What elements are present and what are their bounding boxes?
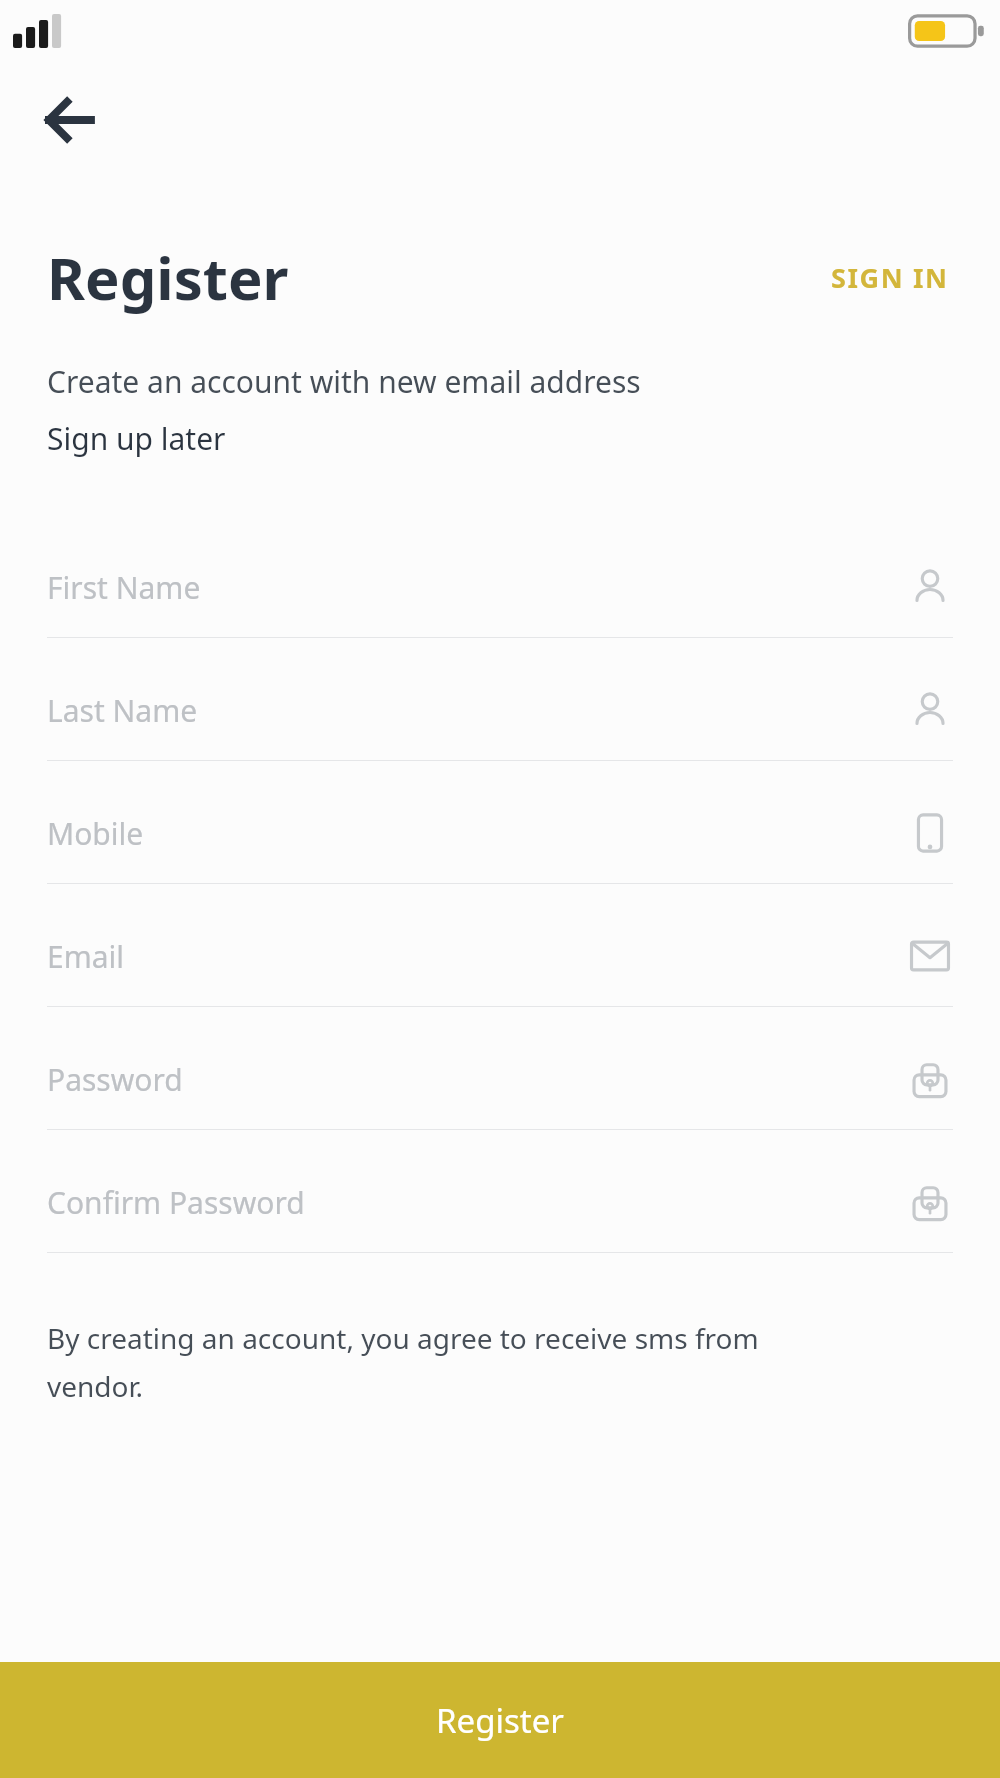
staticText: SIGN IN [831,259,949,296]
button[interactable]: Back [30,82,106,158]
staticText: Sign up later [47,418,226,459]
staticText: Password [47,1059,907,1100]
staticText: vendor. [47,1367,144,1405]
staticText: Register [436,1698,564,1743]
staticText: Register [47,238,827,317]
button[interactable]: First Name [0,537,1000,660]
staticText: Email [47,936,907,977]
button[interactable]: Sign up later [47,418,226,459]
staticText: Mobile [47,813,907,854]
button[interactable]: SIGN IN [827,251,953,304]
staticText: Last Name [47,690,907,731]
button[interactable]: Password [0,1029,1000,1152]
button[interactable]: Mobile [0,783,1000,906]
staticText: Create an account with new email address [47,361,641,402]
staticText: First Name [47,567,907,608]
button[interactable]: Confirm Password [0,1152,1000,1275]
button[interactable]: Register [0,1662,1000,1778]
staticText: By creating an account, you agree to rec… [47,1319,759,1357]
button[interactable]: Email [0,906,1000,1029]
button[interactable]: Last Name [0,660,1000,783]
staticText: Confirm Password [47,1182,907,1223]
